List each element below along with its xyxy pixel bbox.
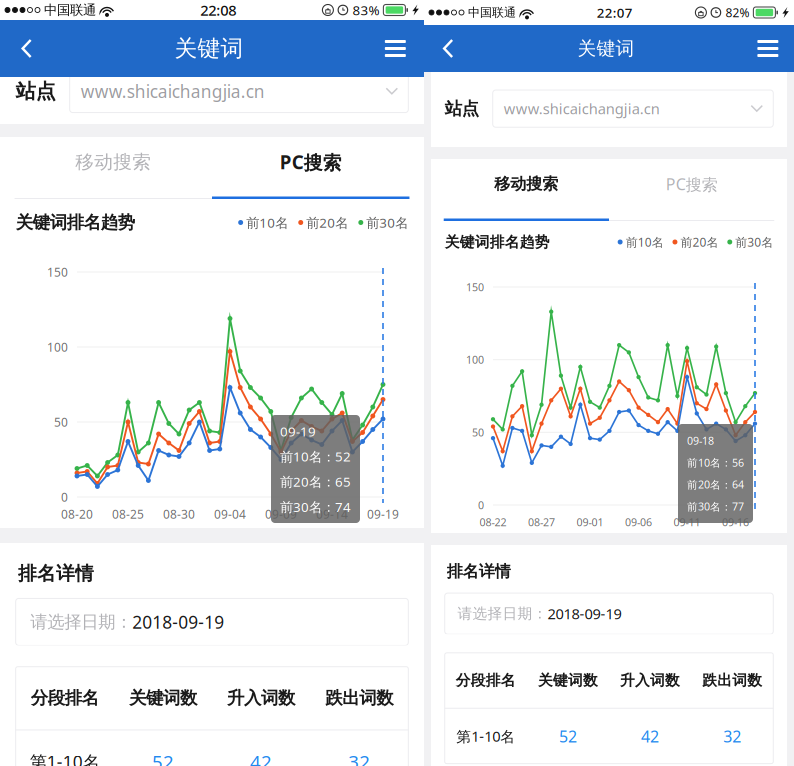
staticText: 前20名 [680, 234, 718, 250]
staticText: 42 [641, 725, 659, 747]
staticText: 08-27 [528, 515, 555, 529]
staticText: 09-19 [367, 506, 399, 522]
button[interactable]: 返回 [0, 20, 45, 77]
staticText: 09-16 [722, 515, 749, 529]
staticText: 08-22 [479, 515, 506, 529]
staticText: 前10名 [246, 214, 288, 231]
staticText: 09-06 [625, 515, 652, 529]
staticText: PC搜索 [666, 173, 718, 195]
staticText: 分段排名 [456, 671, 516, 689]
staticText: 08-25 [112, 506, 144, 522]
staticText: 跌出词数 [325, 687, 393, 709]
button[interactable]: 返回 [424, 25, 467, 72]
staticText: 前20名：65 [280, 473, 351, 490]
staticText: 09-18 [687, 433, 714, 448]
staticText: 中国联通 [40, 2, 100, 18]
staticText: 前30名：77 [687, 499, 744, 513]
staticText: 08-20 [61, 506, 93, 522]
staticText: 09-19 [280, 422, 316, 440]
staticText: 排名详情 [18, 562, 94, 585]
staticText: 82% [725, 4, 749, 20]
staticText: 关键词数 [129, 687, 197, 709]
staticText: 50 [472, 425, 484, 439]
staticText: 排名详情 [447, 562, 511, 581]
staticText: 关键词排名趋势 [16, 212, 135, 233]
staticText: 09-09 [265, 506, 297, 522]
staticText: 站点 [445, 98, 479, 119]
staticText: 分段排名 [31, 687, 99, 709]
staticText: 09-01 [576, 515, 603, 529]
staticText: 100 [466, 353, 484, 367]
staticText: 52 [152, 749, 174, 766]
staticText: 32 [348, 749, 370, 766]
button[interactable]: 请选择日期： [431, 593, 773, 634]
button[interactable]: PC搜索 [609, 159, 774, 221]
staticText: 请选择日期： [457, 605, 547, 623]
staticText: 0 [478, 498, 484, 512]
staticText: 中国联通 [464, 5, 520, 20]
button[interactable]: 移动搜索 [444, 159, 609, 221]
staticText: 请选择日期： [30, 611, 132, 633]
staticText: 前20名 [306, 214, 348, 231]
staticText: www.shicaichangjia.cn [504, 99, 660, 118]
staticText: 150 [47, 264, 68, 280]
staticText: 移动搜索 [75, 150, 151, 173]
staticText: 关键词 [174, 35, 243, 62]
staticText: 关键词排名趋势 [445, 233, 550, 251]
staticText: 第1-10名 [456, 726, 515, 746]
staticText: 前30名：74 [280, 498, 351, 516]
staticText: 前10名：52 [280, 448, 351, 465]
staticText: PC搜索 [280, 150, 342, 174]
staticText: 2018-09-19 [132, 610, 224, 633]
staticText: 关键词数 [538, 671, 598, 689]
staticText: www.shicaichangjia.cn [81, 80, 265, 103]
button[interactable]: 菜单 [745, 25, 794, 72]
staticText: 前30名 [735, 234, 773, 250]
staticText: 22:08 [200, 0, 236, 20]
staticText: 09-04 [214, 506, 246, 522]
button[interactable]: 菜单 [373, 20, 424, 77]
staticText: 32 [723, 725, 741, 747]
staticText: 52 [559, 725, 577, 747]
staticText: 22:07 [597, 4, 633, 21]
staticText: 09-14 [316, 506, 348, 522]
staticText: 83% [352, 1, 379, 19]
staticText: 关键词 [577, 37, 634, 60]
staticText: 08-30 [163, 506, 195, 522]
staticText: 站点 [16, 79, 56, 104]
staticText: 第1-10名 [30, 750, 100, 766]
staticText: 前10名 [626, 234, 664, 250]
staticText: 升入词数 [620, 671, 680, 689]
button[interactable]: 请选择日期： [0, 598, 408, 645]
staticText: 50 [54, 414, 68, 430]
staticText: 100 [47, 339, 68, 355]
staticText: 前10名：56 [687, 455, 744, 470]
staticText: 42 [250, 749, 272, 766]
staticText: 2018-09-19 [547, 604, 621, 623]
staticText: 移动搜索 [494, 174, 558, 194]
staticText: 150 [466, 280, 484, 294]
button[interactable]: PC搜索 [212, 137, 409, 199]
button[interactable]: 移动搜索 [15, 137, 212, 199]
staticText: 前20名：64 [687, 477, 744, 492]
staticText: 0 [61, 489, 68, 505]
staticText: 升入词数 [227, 687, 295, 709]
staticText: 09-11 [674, 515, 701, 529]
staticText: 跌出词数 [702, 671, 762, 689]
staticText: 前30名 [366, 214, 408, 231]
